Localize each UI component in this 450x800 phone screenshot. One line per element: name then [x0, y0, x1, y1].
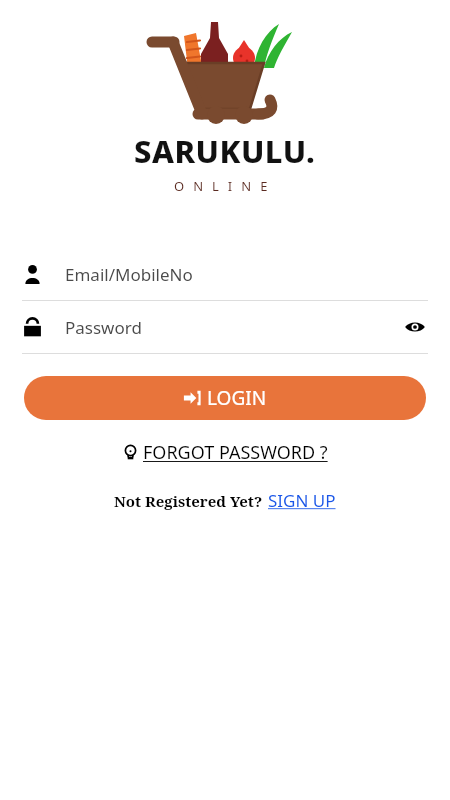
button[interactable]: FORGOT PASSWORD ?	[122, 440, 328, 465]
button[interactable]: Password	[22, 310, 428, 344]
button[interactable]: Show password	[402, 314, 428, 340]
staticText: Not Registered Yet?	[114, 491, 263, 511]
button[interactable]: LOGIN	[24, 376, 426, 420]
staticText: LOGIN	[207, 385, 267, 411]
staticText: Email/MobileNo	[65, 263, 193, 286]
staticText: SARUKULU.	[134, 130, 316, 172]
staticText: Password	[65, 316, 142, 339]
staticText: FORGOT PASSWORD ?	[143, 440, 328, 465]
staticText: SIGN UP	[268, 489, 336, 512]
button[interactable]: Email/MobileNo	[22, 257, 428, 291]
button[interactable]: SIGN UP	[268, 489, 336, 512]
staticText: ONLINE	[174, 177, 277, 195]
